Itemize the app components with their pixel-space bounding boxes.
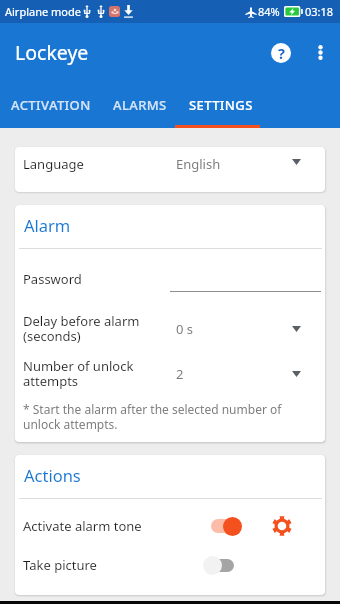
staticText: ? [278, 43, 285, 63]
staticText: Airplane mode [5, 4, 81, 19]
button[interactable]: Activate alarm tone [15, 506, 325, 545]
staticText: Number of unlock attempts [23, 357, 134, 390]
staticText: SETTINGS [189, 96, 253, 114]
staticText: 0 s [176, 320, 194, 338]
staticText: 84% [258, 4, 280, 19]
button[interactable]: Language [15, 147, 325, 180]
staticText: English [176, 155, 221, 173]
staticText: Password [23, 270, 82, 288]
staticText: Lockeye [15, 39, 89, 66]
staticText: Alarm [24, 214, 71, 236]
button[interactable]: Number of unlock attempts [15, 351, 325, 396]
staticText: Activate alarm tone [23, 517, 142, 535]
staticText: Delay before alarm (seconds) [23, 312, 140, 345]
button[interactable]: Delay before alarm (seconds) [15, 306, 325, 351]
staticText: 2 [176, 365, 184, 383]
button[interactable]: Help [264, 36, 297, 69]
staticText: ALARMS [113, 96, 167, 114]
staticText: Actions [24, 464, 81, 486]
button[interactable]: ACTIVATION [0, 81, 102, 128]
staticText: Take picture [23, 556, 97, 574]
staticText: Language [23, 155, 84, 173]
button[interactable]: SETTINGS [178, 81, 264, 128]
staticText: * Start the alarm after the selected num… [23, 401, 282, 432]
button[interactable]: ALARMS [102, 81, 178, 128]
staticText: 03:18 [305, 4, 334, 19]
button[interactable]: Take picture [15, 545, 325, 584]
button[interactable]: Password [15, 258, 325, 300]
button[interactable]: More options [304, 36, 337, 69]
staticText: ACTIVATION [11, 96, 91, 114]
button[interactable]: Alarm tone settings [271, 515, 293, 537]
